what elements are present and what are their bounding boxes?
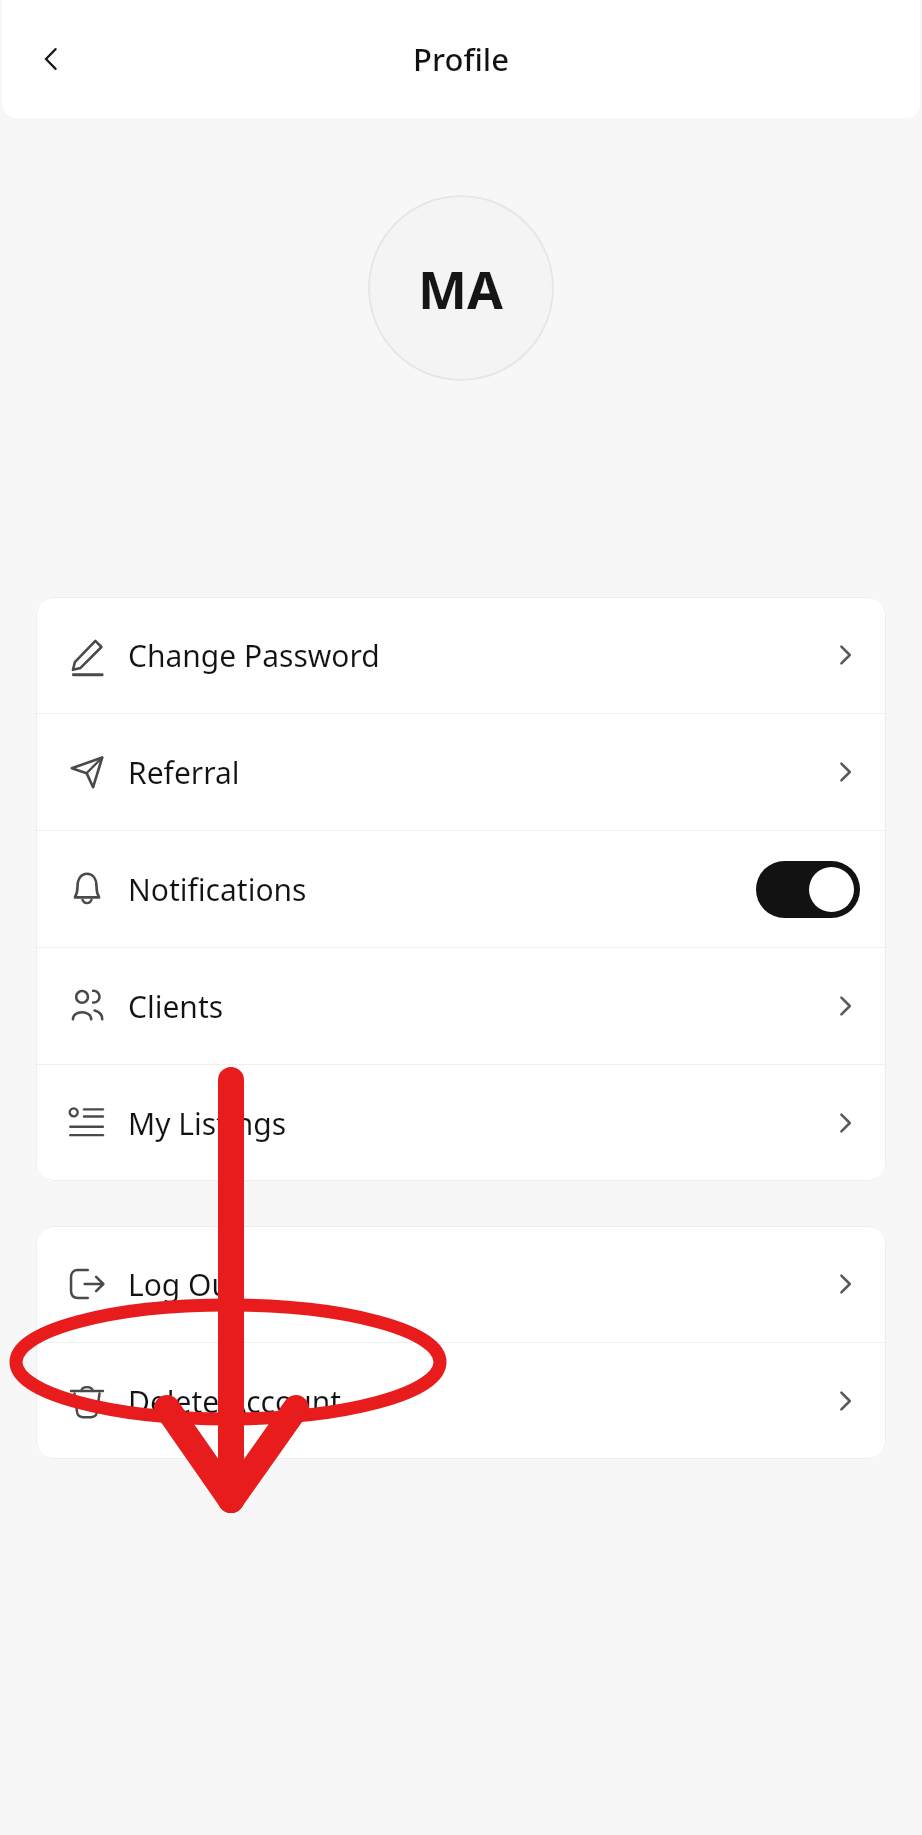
button[interactable]: Notifications toggle	[756, 861, 860, 918]
staticText: Change Password	[128, 635, 830, 676]
button[interactable]: Notifications	[36, 831, 886, 947]
button[interactable]: Clients	[36, 948, 886, 1064]
button[interactable]: My Listings	[36, 1065, 886, 1181]
staticText: Log Out	[128, 1264, 830, 1305]
button[interactable]: MA	[368, 195, 554, 381]
staticText: Delete Account	[128, 1381, 830, 1422]
button[interactable]: Referral	[36, 714, 886, 830]
staticText: Clients	[128, 986, 830, 1027]
button[interactable]: Back	[24, 31, 80, 87]
staticText: Profile	[413, 38, 509, 80]
staticText: My Listings	[128, 1103, 830, 1144]
staticText: Notifications	[128, 869, 756, 910]
button[interactable]: Delete Account	[36, 1343, 886, 1459]
button[interactable]: Change Password	[36, 597, 886, 713]
staticText: MA	[418, 253, 504, 324]
button[interactable]: Log Out	[36, 1226, 886, 1342]
staticText: Referral	[128, 752, 830, 793]
